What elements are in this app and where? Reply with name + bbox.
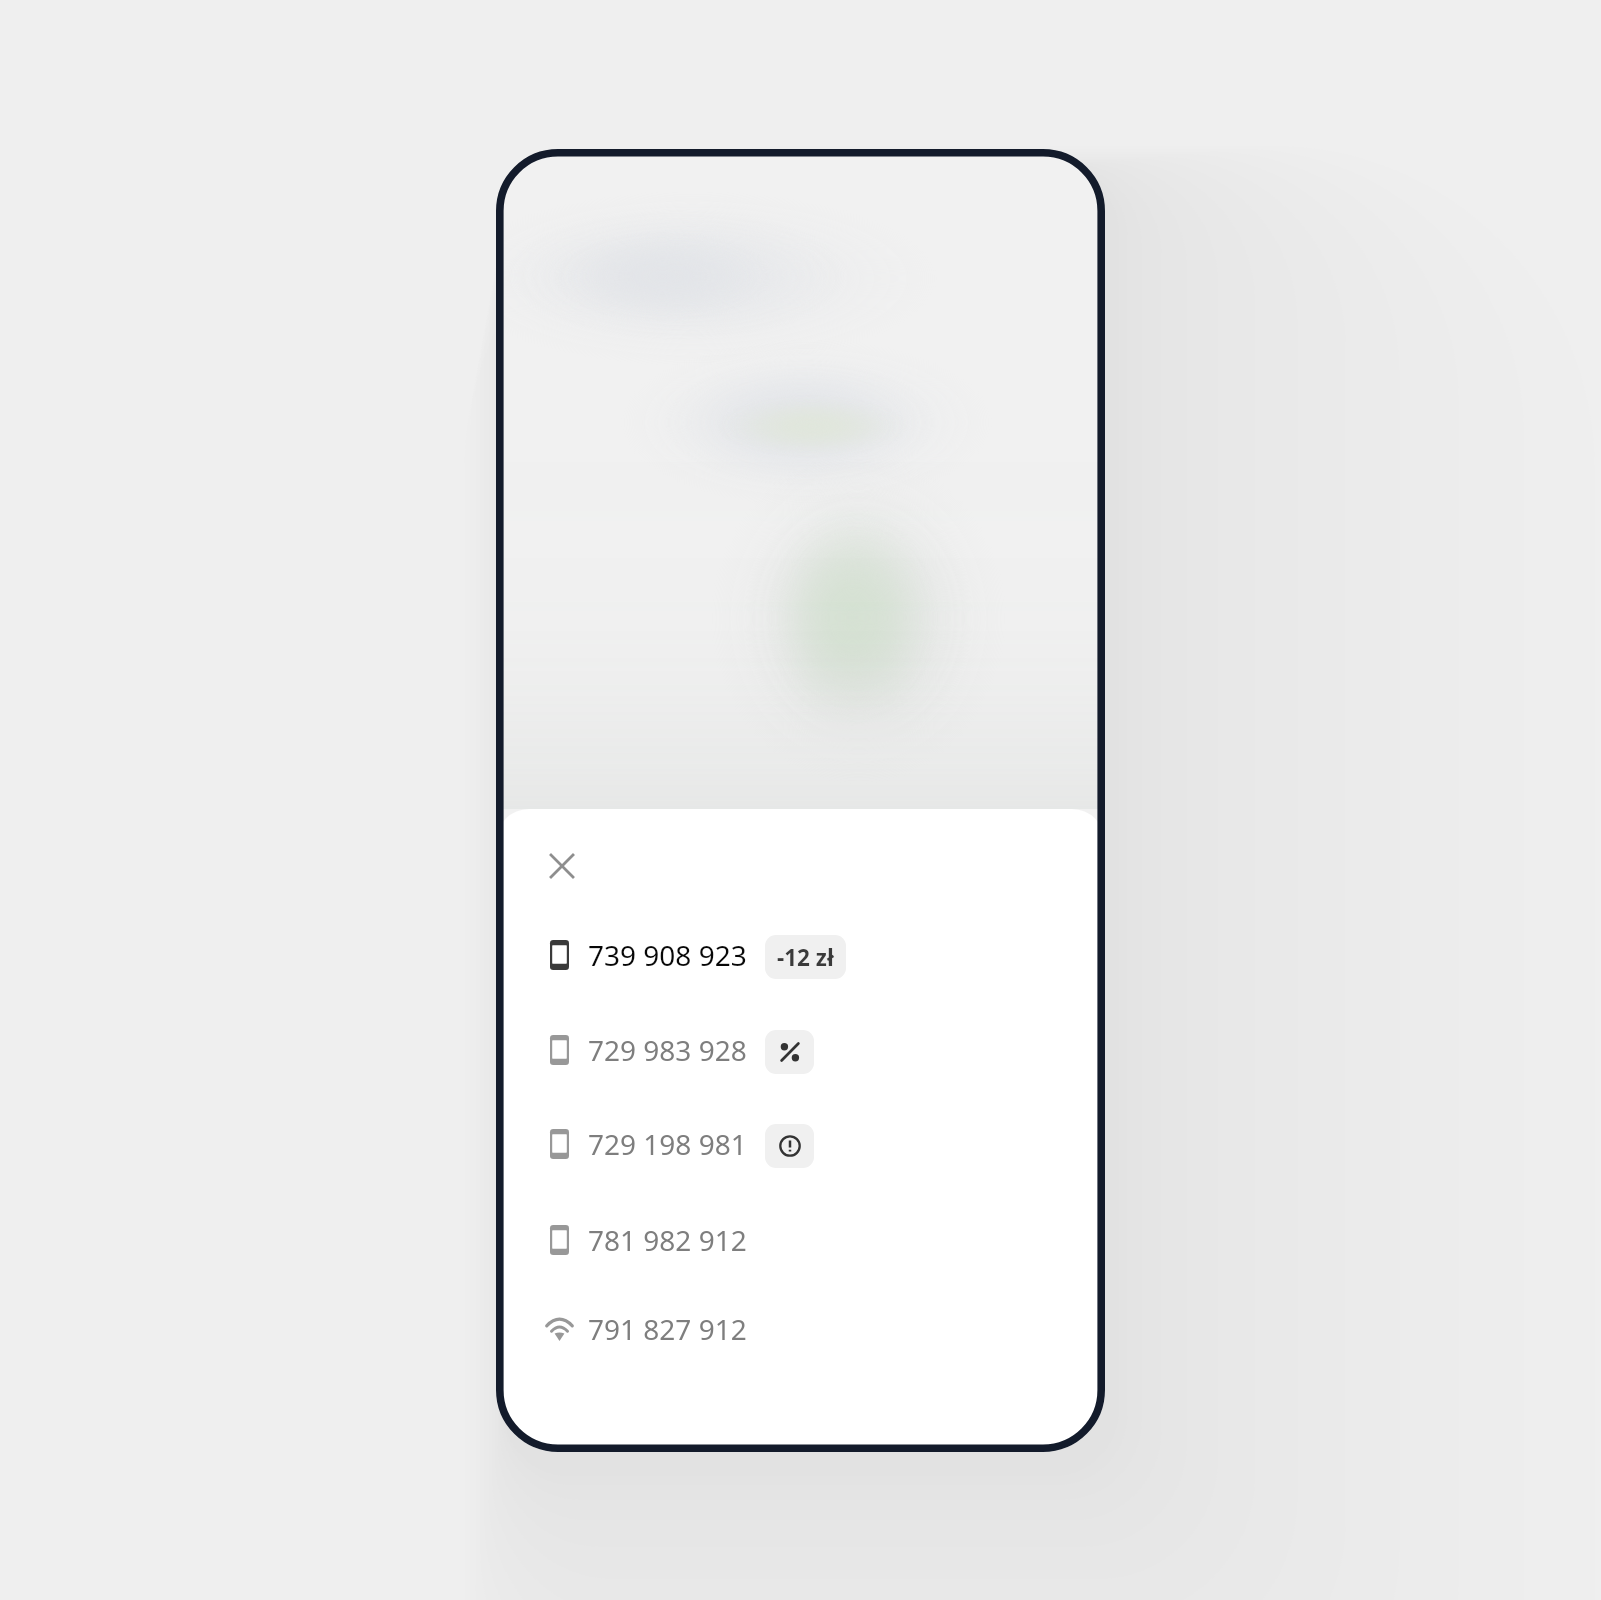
button[interactable]: 791 827 912 <box>496 1281 1105 1376</box>
staticText: 739 908 923 <box>588 936 747 974</box>
button[interactable]: 729 198 981 <box>496 1096 1105 1191</box>
button[interactable]: 739 908 923 <box>496 907 1105 1002</box>
button[interactable]: Warning <box>765 1124 814 1168</box>
button[interactable]: Discount <box>765 1030 814 1074</box>
staticText: -12 zł <box>777 942 834 973</box>
button[interactable]: 729 983 928 <box>496 1002 1105 1097</box>
staticText: 729 983 928 <box>588 1031 747 1069</box>
staticText: 791 827 912 <box>588 1310 747 1348</box>
staticText: 781 982 912 <box>588 1221 747 1259</box>
button[interactable]: 781 982 912 <box>496 1192 1105 1287</box>
staticText: 729 198 981 <box>588 1125 747 1163</box>
button[interactable]: Close <box>538 842 586 890</box>
button[interactable]: -12 zł <box>765 935 846 979</box>
